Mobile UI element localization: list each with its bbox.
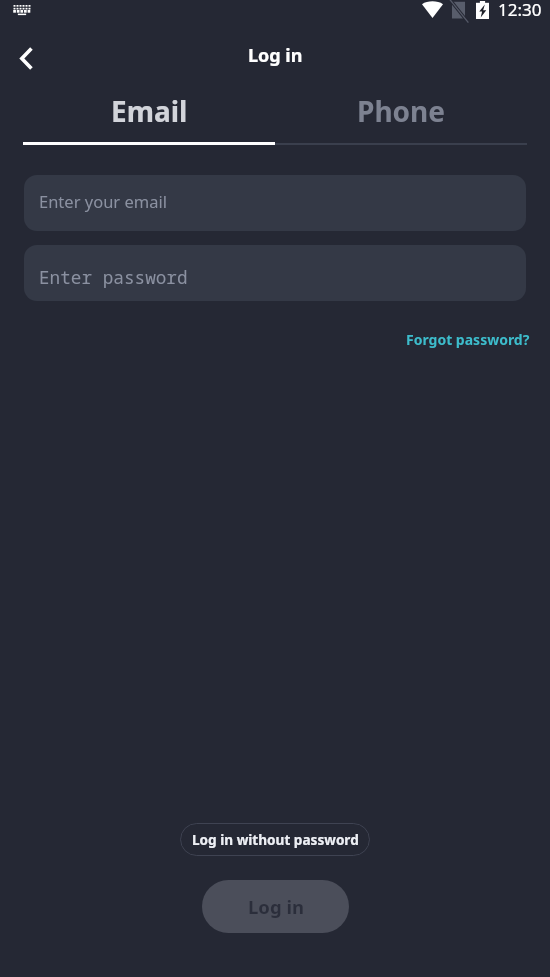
button[interactable]: Forgot password? — [406, 330, 530, 349]
button[interactable]: Email — [23, 84, 275, 137]
button[interactable]: Phone — [275, 84, 527, 137]
staticText: Log in — [248, 894, 304, 919]
staticText: Enter your email — [39, 190, 167, 212]
staticText: Forgot password? — [406, 330, 530, 349]
button[interactable]: Enter your email — [24, 175, 526, 231]
button[interactable]: Log in without password — [180, 823, 370, 856]
button[interactable]: Enter password — [24, 245, 526, 301]
button[interactable]: Back — [0, 31, 52, 79]
staticText: Phone — [357, 92, 446, 130]
staticText: Log in — [248, 43, 303, 68]
button[interactable]: Log in — [202, 880, 349, 933]
staticText: Log in without password — [192, 830, 359, 849]
staticText: Enter password — [39, 265, 188, 289]
staticText: Email — [111, 92, 188, 130]
staticText: 12:30 — [498, 0, 542, 21]
